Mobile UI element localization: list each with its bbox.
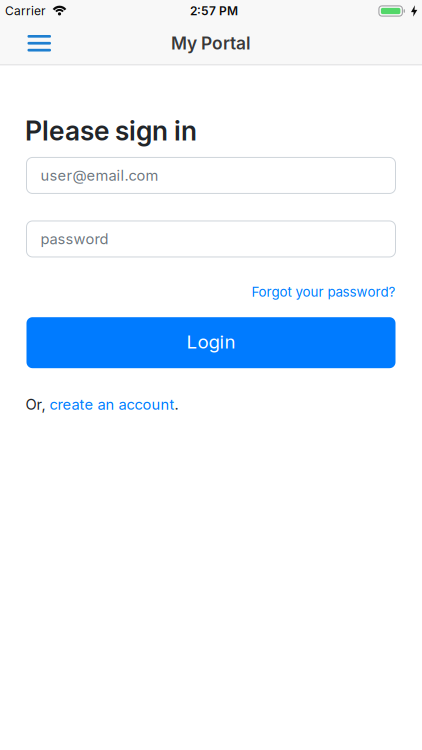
- staticText: user@email.com: [40, 167, 158, 184]
- staticText: .: [174, 396, 178, 413]
- staticText: Forgot your password?: [251, 284, 395, 300]
- button[interactable]: Forgot your password?: [251, 284, 395, 300]
- staticText: Please sign in: [25, 115, 197, 146]
- button[interactable]: create an account: [49, 396, 174, 413]
- staticText: Or,: [25, 396, 49, 413]
- button[interactable]: password: [26, 221, 395, 257]
- staticText: Login: [186, 331, 235, 353]
- button[interactable]: [0, 35, 51, 51]
- button[interactable]: Login: [26, 317, 395, 368]
- button[interactable]: user@email.com: [26, 157, 395, 193]
- staticText: My Portal: [171, 33, 251, 53]
- staticText: 2:57 PM: [190, 4, 238, 18]
- staticText: create an account: [49, 396, 174, 413]
- staticText: Carrier: [5, 4, 46, 18]
- staticText: password: [40, 230, 108, 248]
